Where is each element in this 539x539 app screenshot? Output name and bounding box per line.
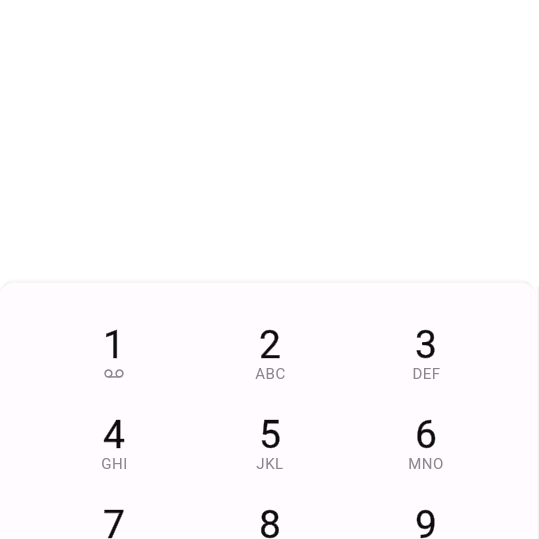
button[interactable]: 4 [36,373,192,463]
staticText: JKL [256,455,284,473]
staticText: 9 [415,502,437,539]
staticText: 6 [415,412,437,458]
button[interactable]: 8 [192,463,348,539]
button[interactable]: 3 [348,283,504,373]
staticText: 4 [103,412,125,458]
button[interactable]: 1 voicemail [36,283,192,373]
button[interactable]: 6 [348,373,504,463]
staticText: 5 [259,412,281,458]
staticText: ABC [255,365,286,383]
button[interactable]: 5 [192,373,348,463]
staticText: MNO [408,455,444,473]
staticText: DEF [412,365,441,383]
staticText: 3 [415,322,437,368]
staticText: 1 [103,322,125,368]
button[interactable]: 2 [192,283,348,373]
button[interactable]: 7 [36,463,192,539]
staticText: 2 [259,322,281,368]
button[interactable]: 9 [348,463,504,539]
staticText: GHI [101,455,128,473]
staticText: 8 [259,502,281,539]
staticText: 7 [103,502,125,539]
